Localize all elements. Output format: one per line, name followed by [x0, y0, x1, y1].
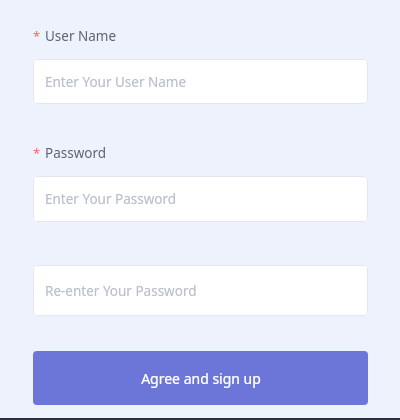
staticText: *	[33, 27, 41, 45]
button[interactable]: Re-enter Your Password	[33, 265, 368, 316]
staticText: Re-enter Your Password	[45, 282, 197, 300]
staticText: Agree and sign up	[141, 369, 261, 388]
staticText: *	[33, 144, 41, 162]
button[interactable]: Enter Your User Name	[33, 59, 368, 104]
staticText: User Name	[45, 27, 117, 45]
staticText: Password	[45, 144, 107, 162]
button[interactable]: Enter Your Password	[33, 176, 368, 222]
button[interactable]: Agree and sign up	[33, 351, 368, 405]
staticText: Enter Your Password	[45, 190, 177, 208]
staticText: Enter Your User Name	[45, 73, 187, 91]
